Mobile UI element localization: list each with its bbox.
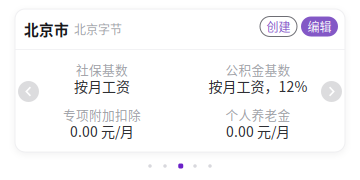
staticText: 按月工资，12%: [208, 76, 307, 96]
button[interactable]: 公积金基数: [180, 56, 336, 101]
button[interactable]: 专项附加扣除: [24, 101, 180, 146]
button[interactable]: 创建: [260, 16, 297, 36]
staticText: 社保基数: [76, 60, 128, 79]
button[interactable]: 个人养老金: [180, 101, 336, 146]
staticText: 创建: [266, 18, 290, 35]
button[interactable]: 社保基数: [24, 56, 180, 101]
staticText: 专项附加扣除: [63, 105, 141, 124]
staticText: 0.00 元/月: [70, 121, 134, 141]
button[interactable]: Previous: [18, 81, 39, 102]
button[interactable]: Next: [321, 81, 342, 102]
staticText: 个人养老金: [225, 105, 290, 124]
staticText: 公积金基数: [225, 60, 290, 79]
staticText: 北京市: [24, 18, 69, 40]
staticText: 0.00 元/月: [226, 121, 290, 141]
staticText: 按月工资: [74, 76, 130, 96]
staticText: 北京字节: [74, 20, 122, 38]
button[interactable]: 编辑: [301, 16, 338, 36]
staticText: 编辑: [307, 18, 331, 35]
